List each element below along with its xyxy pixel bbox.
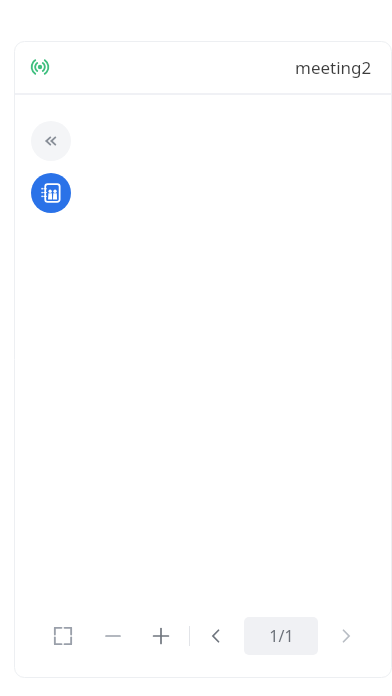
staticText: meeting2 — [295, 56, 372, 79]
button[interactable]: Fit to screen — [43, 616, 83, 656]
button[interactable]: Previous page — [198, 618, 234, 654]
button[interactable]: Collapse — [31, 121, 71, 161]
button[interactable]: Next page — [328, 618, 364, 654]
staticText: 1/1 — [269, 625, 294, 647]
button[interactable]: Whiteboard — [31, 173, 71, 213]
button[interactable]: Zoom out — [95, 618, 131, 654]
button[interactable]: Live status — [26, 53, 54, 81]
button[interactable]: Zoom in — [143, 618, 179, 654]
button[interactable]: 1/1 — [244, 617, 318, 655]
